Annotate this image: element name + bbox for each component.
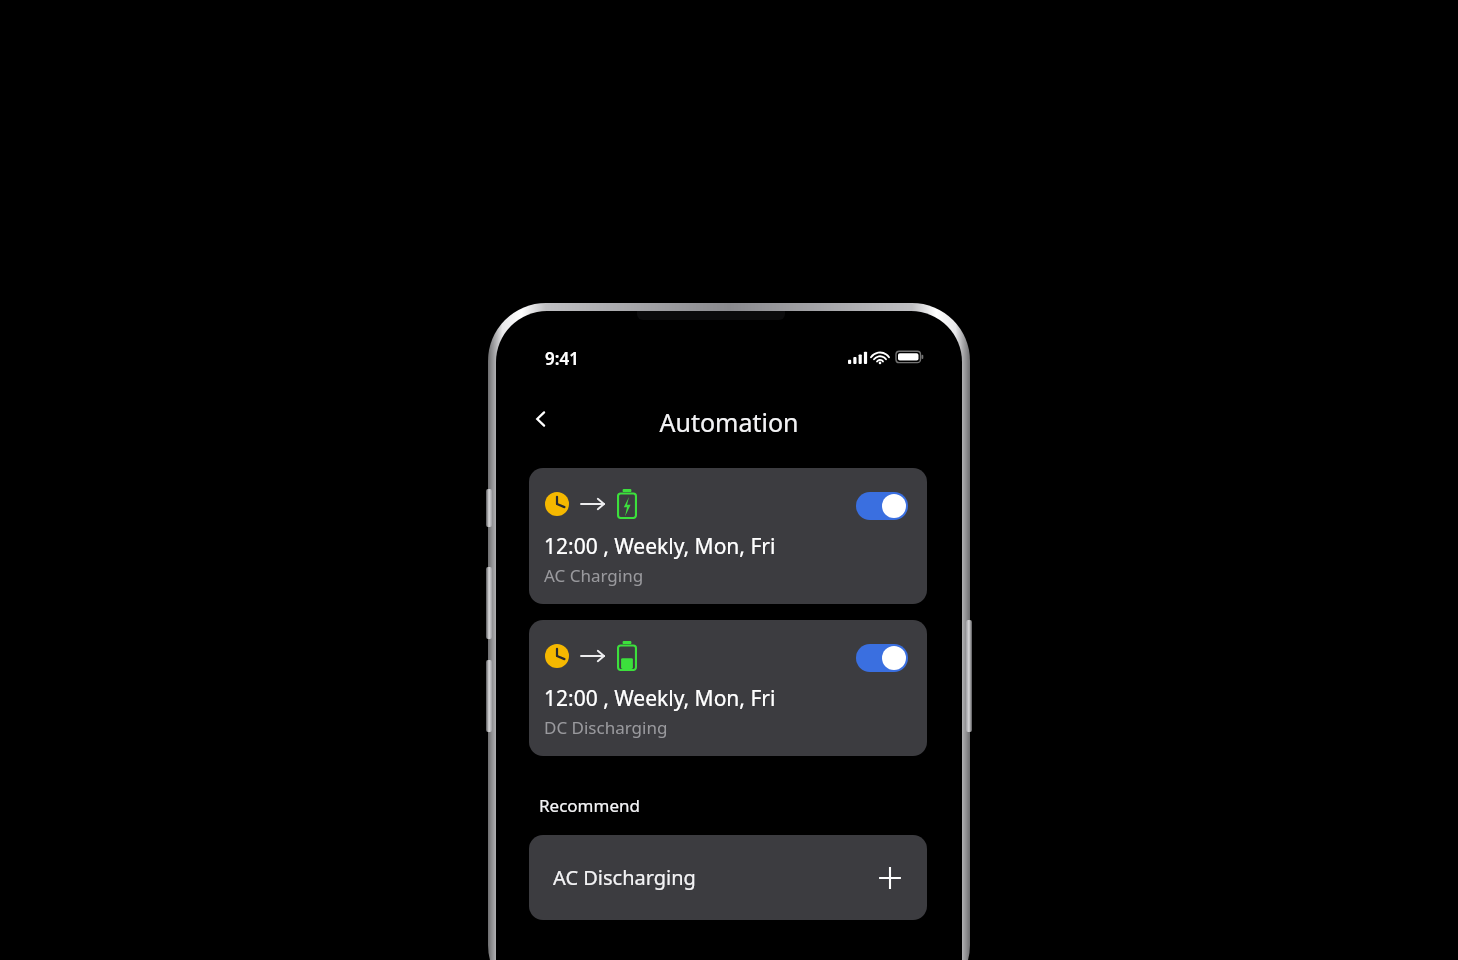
button[interactable]: Toggle AC Charging (856, 492, 908, 520)
staticText: 12:00 , Weekly, Mon, Fri (544, 684, 776, 713)
button[interactable]: Toggle AC Charging (529, 468, 927, 604)
staticText: Automation (496, 405, 962, 439)
button[interactable]: Toggle DC Discharging (529, 620, 927, 756)
staticText: 9:41 (545, 347, 579, 370)
button[interactable]: AC Discharging (529, 835, 927, 920)
button[interactable]: Toggle DC Discharging (856, 644, 908, 672)
staticText: AC Charging (544, 564, 644, 587)
staticText: DC Discharging (544, 716, 668, 739)
staticText: Recommend (539, 794, 640, 817)
button[interactable]: Back (519, 397, 563, 441)
staticText: AC Discharging (553, 864, 696, 891)
staticText: 12:00 , Weekly, Mon, Fri (544, 532, 776, 561)
